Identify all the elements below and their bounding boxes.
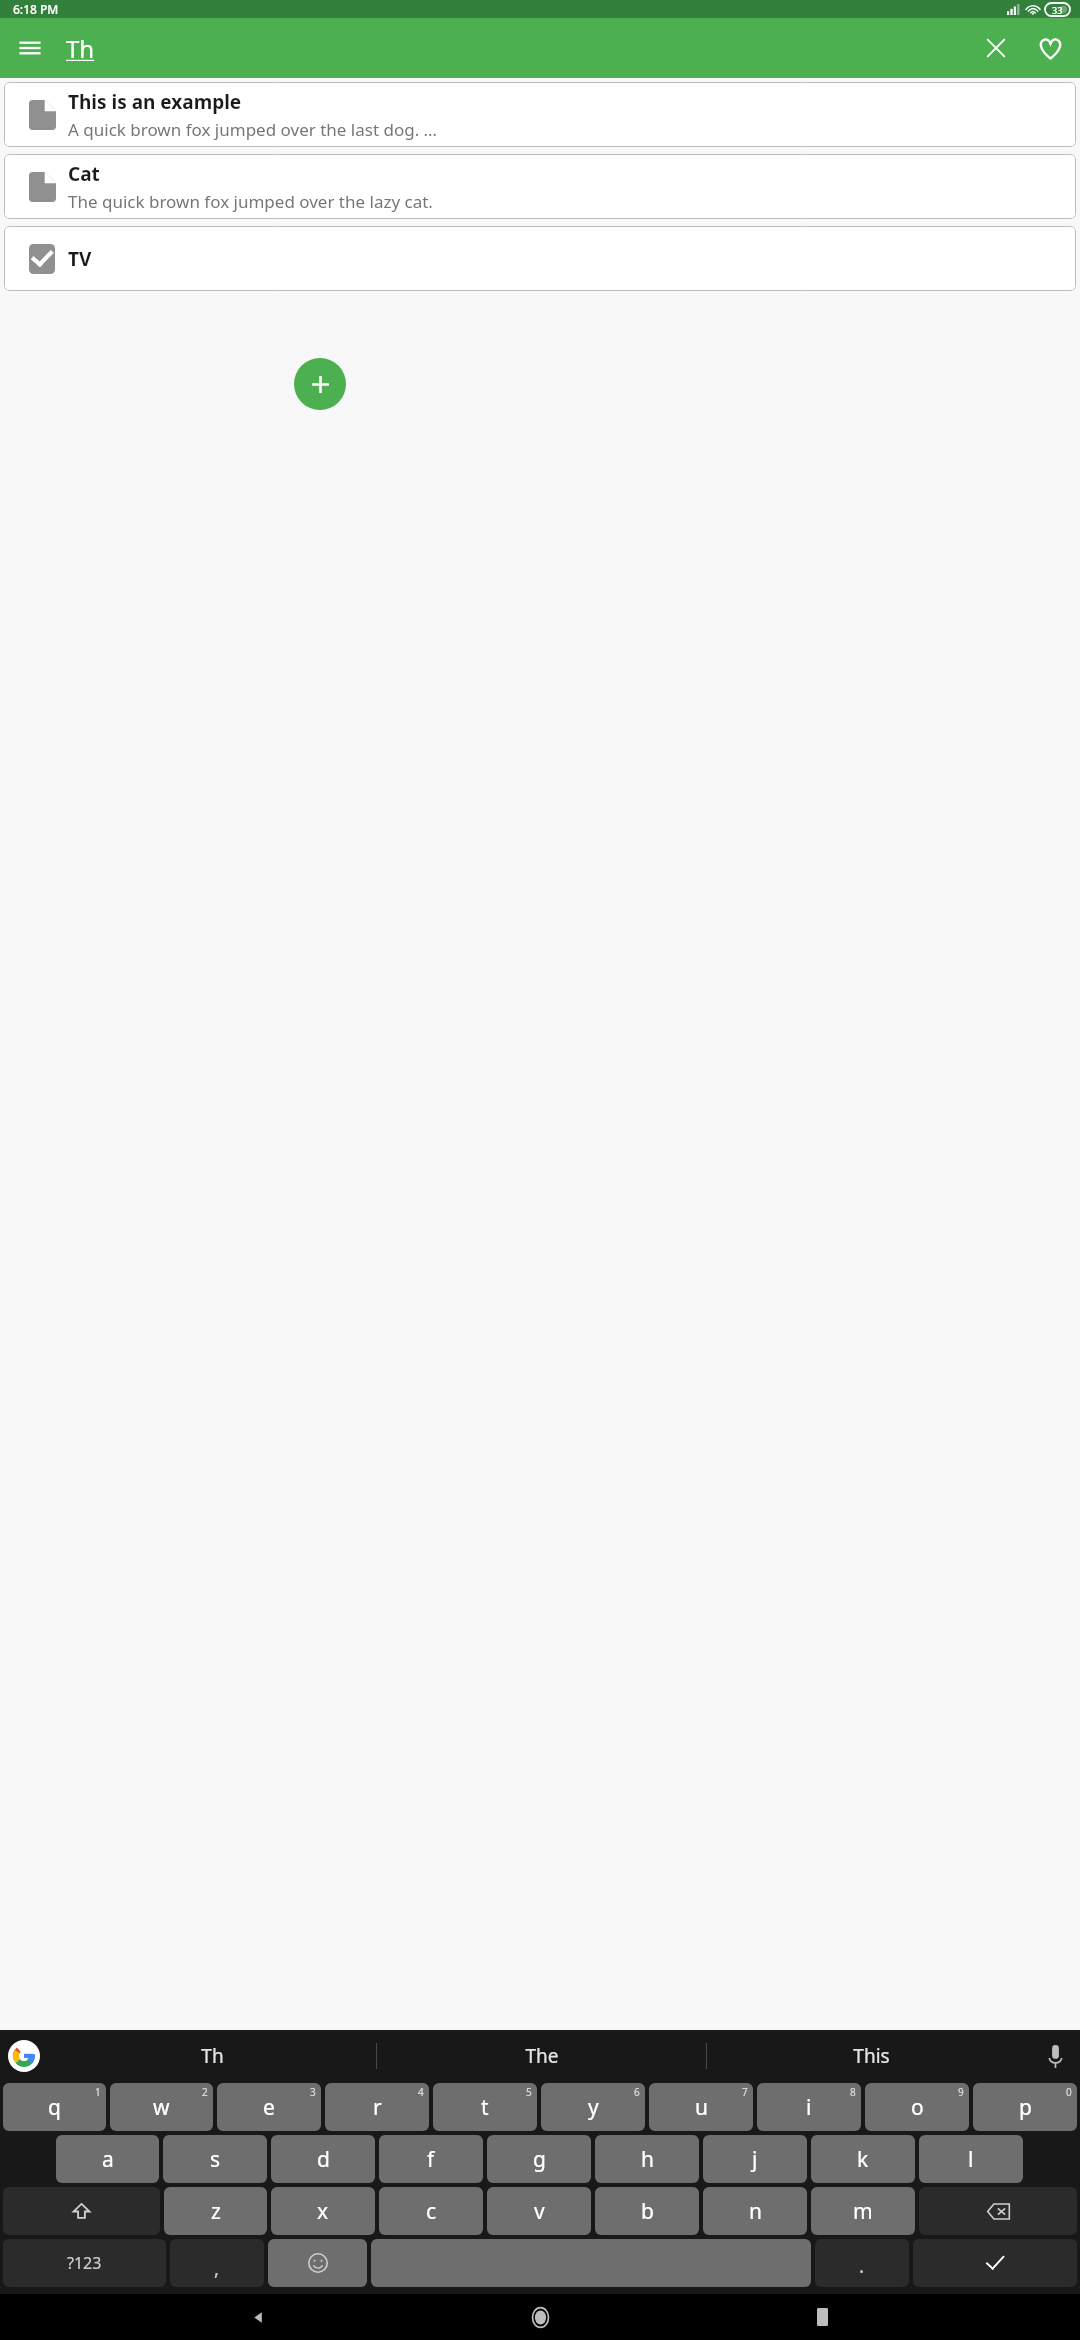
- button[interactable]: Add note: [294, 358, 346, 410]
- staticText: p: [1019, 2093, 1032, 2122]
- button[interactable]: Emoji: [268, 2239, 367, 2287]
- button[interactable]: o: [865, 2083, 969, 2131]
- button[interactable]: p: [973, 2083, 1077, 2131]
- staticText: Th: [66, 32, 95, 65]
- button[interactable]: y: [541, 2083, 645, 2131]
- button[interactable]: b: [595, 2187, 699, 2235]
- button[interactable]: The: [377, 2030, 706, 2081]
- staticText: n: [749, 2197, 762, 2226]
- button[interactable]: Back: [234, 2294, 282, 2340]
- button[interactable]: a: [56, 2135, 159, 2183]
- button[interactable]: e: [217, 2083, 321, 2131]
- staticText: h: [641, 2145, 654, 2174]
- button[interactable]: Google: [8, 2040, 40, 2072]
- staticText: r: [373, 2093, 382, 2122]
- button[interactable]: Cat: [4, 154, 1076, 219]
- button[interactable]: m: [811, 2187, 915, 2235]
- staticText: i: [806, 2093, 812, 2122]
- staticText: a: [102, 2145, 114, 2174]
- staticText: s: [210, 2145, 221, 2174]
- staticText: l: [968, 2145, 974, 2174]
- button[interactable]: w: [110, 2083, 213, 2131]
- button[interactable]: x: [271, 2187, 375, 2235]
- staticText: TV: [68, 246, 92, 272]
- staticText: y: [588, 2093, 599, 2122]
- button[interactable]: This: [707, 2030, 1036, 2081]
- staticText: This: [853, 2043, 890, 2069]
- staticText: c: [426, 2197, 437, 2226]
- staticText: The quick brown fox jumped over the lazy…: [68, 190, 433, 213]
- button[interactable]: v: [487, 2187, 591, 2235]
- staticText: u: [695, 2093, 708, 2122]
- staticText: m: [853, 2197, 873, 2226]
- button[interactable]: i: [757, 2083, 861, 2131]
- staticText: 4: [418, 2085, 424, 2099]
- staticText: w: [153, 2093, 170, 2122]
- button[interactable]: g: [487, 2135, 591, 2183]
- button[interactable]: h: [595, 2135, 699, 2183]
- staticText: 8: [850, 2085, 856, 2099]
- staticText: This is an example: [68, 89, 242, 115]
- staticText: o: [911, 2093, 924, 2122]
- button[interactable]: Symbols: [3, 2239, 166, 2287]
- button[interactable]: d: [271, 2135, 375, 2183]
- button[interactable]: z: [164, 2187, 267, 2235]
- button[interactable]: r: [325, 2083, 429, 2131]
- staticText: k: [857, 2145, 869, 2174]
- button[interactable]: f: [379, 2135, 483, 2183]
- button[interactable]: Period: [815, 2239, 909, 2287]
- button[interactable]: t: [433, 2083, 537, 2131]
- staticText: x: [317, 2197, 329, 2226]
- button[interactable]: u: [649, 2083, 753, 2131]
- button[interactable]: Done: [913, 2239, 1077, 2287]
- staticText: Cat: [68, 161, 100, 187]
- staticText: 33: [1052, 4, 1063, 16]
- button[interactable]: Open navigation menu: [6, 24, 54, 72]
- button[interactable]: Space: [371, 2239, 811, 2287]
- button[interactable]: Th: [48, 2030, 376, 2081]
- staticText: The: [525, 2043, 559, 2069]
- staticText: b: [641, 2197, 654, 2226]
- button[interactable]: Shift: [3, 2187, 160, 2235]
- button[interactable]: TV: [4, 226, 1076, 291]
- button[interactable]: Home: [516, 2294, 564, 2340]
- button[interactable]: Voice input: [1038, 2039, 1072, 2073]
- staticText: 6:18 PM: [13, 1, 59, 17]
- button[interactable]: Comma: [170, 2239, 264, 2287]
- staticText: Th: [201, 2043, 224, 2069]
- staticText: j: [752, 2145, 758, 2174]
- staticText: f: [427, 2145, 435, 2174]
- staticText: 1: [95, 2085, 101, 2099]
- staticText: z: [211, 2197, 221, 2226]
- button[interactable]: Favorites: [1026, 24, 1074, 72]
- button[interactable]: q: [3, 2083, 106, 2131]
- button[interactable]: s: [163, 2135, 267, 2183]
- button[interactable]: Recent apps: [798, 2294, 846, 2340]
- button[interactable]: Close search: [972, 24, 1020, 72]
- button[interactable]: c: [379, 2187, 483, 2235]
- staticText: A quick brown fox jumped over the last d…: [68, 118, 438, 141]
- staticText: 3: [310, 2085, 316, 2099]
- staticText: 7: [742, 2085, 748, 2099]
- staticText: v: [534, 2197, 545, 2226]
- staticText: g: [533, 2145, 546, 2174]
- button[interactable]: Backspace: [919, 2187, 1077, 2235]
- staticText: d: [317, 2145, 330, 2174]
- staticText: .: [859, 2253, 865, 2279]
- staticText: ,: [214, 2255, 220, 2281]
- staticText: e: [263, 2093, 275, 2122]
- staticText: 5: [526, 2085, 532, 2099]
- staticText: t: [481, 2093, 489, 2122]
- staticText: 9: [958, 2085, 964, 2099]
- staticText: 2: [202, 2085, 208, 2099]
- staticText: ?123: [67, 2252, 102, 2274]
- staticText: 6: [634, 2085, 640, 2099]
- button[interactable]: j: [703, 2135, 807, 2183]
- button[interactable]: n: [703, 2187, 807, 2235]
- staticText: 0: [1066, 2085, 1072, 2099]
- staticText: q: [48, 2093, 61, 2122]
- button[interactable]: k: [811, 2135, 915, 2183]
- button[interactable]: l: [919, 2135, 1023, 2183]
- button[interactable]: This is an example: [4, 82, 1076, 147]
